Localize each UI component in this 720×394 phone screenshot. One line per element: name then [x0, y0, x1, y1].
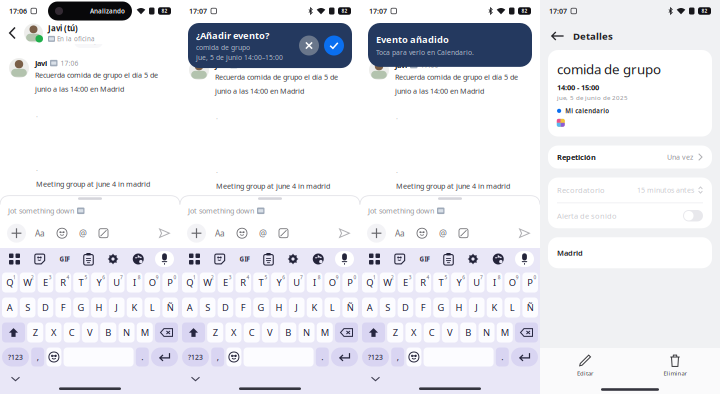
button[interactable]: Backspace	[155, 322, 178, 342]
button[interactable]: H	[451, 297, 467, 317]
button[interactable]: ?123	[182, 347, 209, 366]
button[interactable]: O	[145, 272, 160, 292]
button[interactable]: Y	[271, 272, 287, 292]
button[interactable]: M	[317, 322, 333, 342]
button[interactable]: Y	[451, 272, 467, 292]
button[interactable]: S	[380, 297, 395, 317]
button[interactable]: G	[73, 297, 89, 317]
button[interactable]: Shift	[2, 322, 25, 342]
button[interactable]: P	[162, 272, 178, 292]
button[interactable]: Dismiss	[299, 35, 319, 55]
button[interactable]: Z	[207, 322, 223, 342]
button[interactable]: Apps	[366, 250, 383, 267]
button[interactable]: Emoji	[414, 225, 430, 241]
button[interactable]: J	[289, 297, 304, 317]
button[interactable]: R	[55, 272, 71, 292]
button[interactable]: W	[200, 272, 215, 292]
button[interactable]: U	[289, 272, 304, 292]
button[interactable]: D	[398, 297, 413, 317]
button[interactable]: @	[256, 224, 270, 242]
button[interactable]: GIF	[236, 252, 252, 266]
button[interactable]: F	[55, 297, 71, 317]
button[interactable]: V	[262, 322, 278, 342]
button[interactable]: G	[433, 297, 449, 317]
button[interactable]: Theme	[490, 250, 507, 267]
button[interactable]: ,	[31, 347, 44, 366]
button[interactable]: Z	[387, 322, 403, 342]
button[interactable]: Emoji	[234, 225, 250, 241]
button[interactable]: GIF	[416, 252, 432, 266]
button[interactable]: G	[253, 297, 269, 317]
button[interactable]: Ñ	[162, 297, 178, 317]
button[interactable]: Ñ	[342, 297, 358, 317]
button[interactable]: Q	[362, 272, 378, 292]
button[interactable]: T	[73, 272, 89, 292]
button[interactable]: D	[218, 297, 233, 317]
button[interactable]: E	[218, 272, 233, 292]
button[interactable]: M	[497, 322, 513, 342]
button[interactable]: Z	[27, 322, 43, 342]
button[interactable]: I	[487, 272, 502, 292]
button[interactable]: GIF	[56, 252, 72, 266]
button[interactable]: Y	[91, 272, 107, 292]
button[interactable]: X	[225, 322, 242, 342]
button[interactable]: Clipboard	[81, 250, 96, 268]
button[interactable]: I	[127, 272, 142, 292]
button[interactable]: Return	[331, 347, 358, 366]
button[interactable]: Q	[182, 272, 198, 292]
button[interactable]: @	[76, 224, 90, 242]
button[interactable]: Aa	[392, 225, 408, 242]
button[interactable]: Theme	[130, 250, 147, 267]
button[interactable]: Voice input	[515, 251, 534, 267]
button[interactable]: L	[145, 297, 160, 317]
button[interactable]: Repetición	[548, 145, 712, 168]
button[interactable]: U	[109, 272, 124, 292]
button[interactable]: I	[307, 272, 322, 292]
button[interactable]: X	[45, 322, 62, 342]
button[interactable]: Q	[2, 272, 18, 292]
button[interactable]: P	[342, 272, 358, 292]
button[interactable]: K	[307, 297, 322, 317]
button[interactable]: S	[20, 297, 35, 317]
button[interactable]: Format	[276, 226, 291, 241]
button[interactable]: Emoji	[46, 347, 61, 366]
button[interactable]: Editar	[540, 351, 630, 380]
button[interactable]: P	[522, 272, 538, 292]
button[interactable]: R	[235, 272, 251, 292]
button[interactable]: Format	[456, 226, 471, 241]
button[interactable]: E	[38, 272, 53, 292]
button[interactable]: A	[362, 297, 378, 317]
button[interactable]: Send	[336, 225, 353, 241]
button[interactable]: Apps	[186, 250, 203, 267]
button[interactable]: Stickers	[31, 250, 48, 267]
button[interactable]: Voice input	[335, 251, 354, 267]
button[interactable]: Stickers	[211, 250, 228, 267]
button[interactable]: Evento añadido	[368, 23, 532, 67]
button[interactable]: J	[469, 297, 484, 317]
button[interactable]: Clipboard	[441, 250, 456, 268]
button[interactable]: Eliminar	[630, 351, 720, 380]
button[interactable]: O	[505, 272, 520, 292]
button[interactable]: Emoji	[54, 225, 70, 241]
button[interactable]: Stickers	[391, 250, 408, 267]
button[interactable]: B	[100, 322, 116, 342]
button[interactable]: R	[415, 272, 431, 292]
button[interactable]: Voice input	[155, 251, 174, 267]
button[interactable]: Send	[156, 225, 173, 241]
button[interactable]: L	[325, 297, 340, 317]
button[interactable]: B	[460, 322, 476, 342]
button[interactable]: Emoji	[226, 347, 241, 366]
button[interactable]: ,	[391, 347, 404, 366]
button[interactable]: Send	[516, 225, 533, 241]
button[interactable]: Add attachment	[367, 224, 386, 243]
button[interactable]: B	[280, 322, 296, 342]
button[interactable]: V	[442, 322, 458, 342]
button[interactable]: Hide keyboard	[368, 373, 383, 384]
button[interactable]: Hide keyboard	[8, 373, 23, 384]
button[interactable]: W	[20, 272, 35, 292]
button[interactable]: Backspace	[335, 322, 358, 342]
button[interactable]: Aa	[212, 225, 228, 242]
